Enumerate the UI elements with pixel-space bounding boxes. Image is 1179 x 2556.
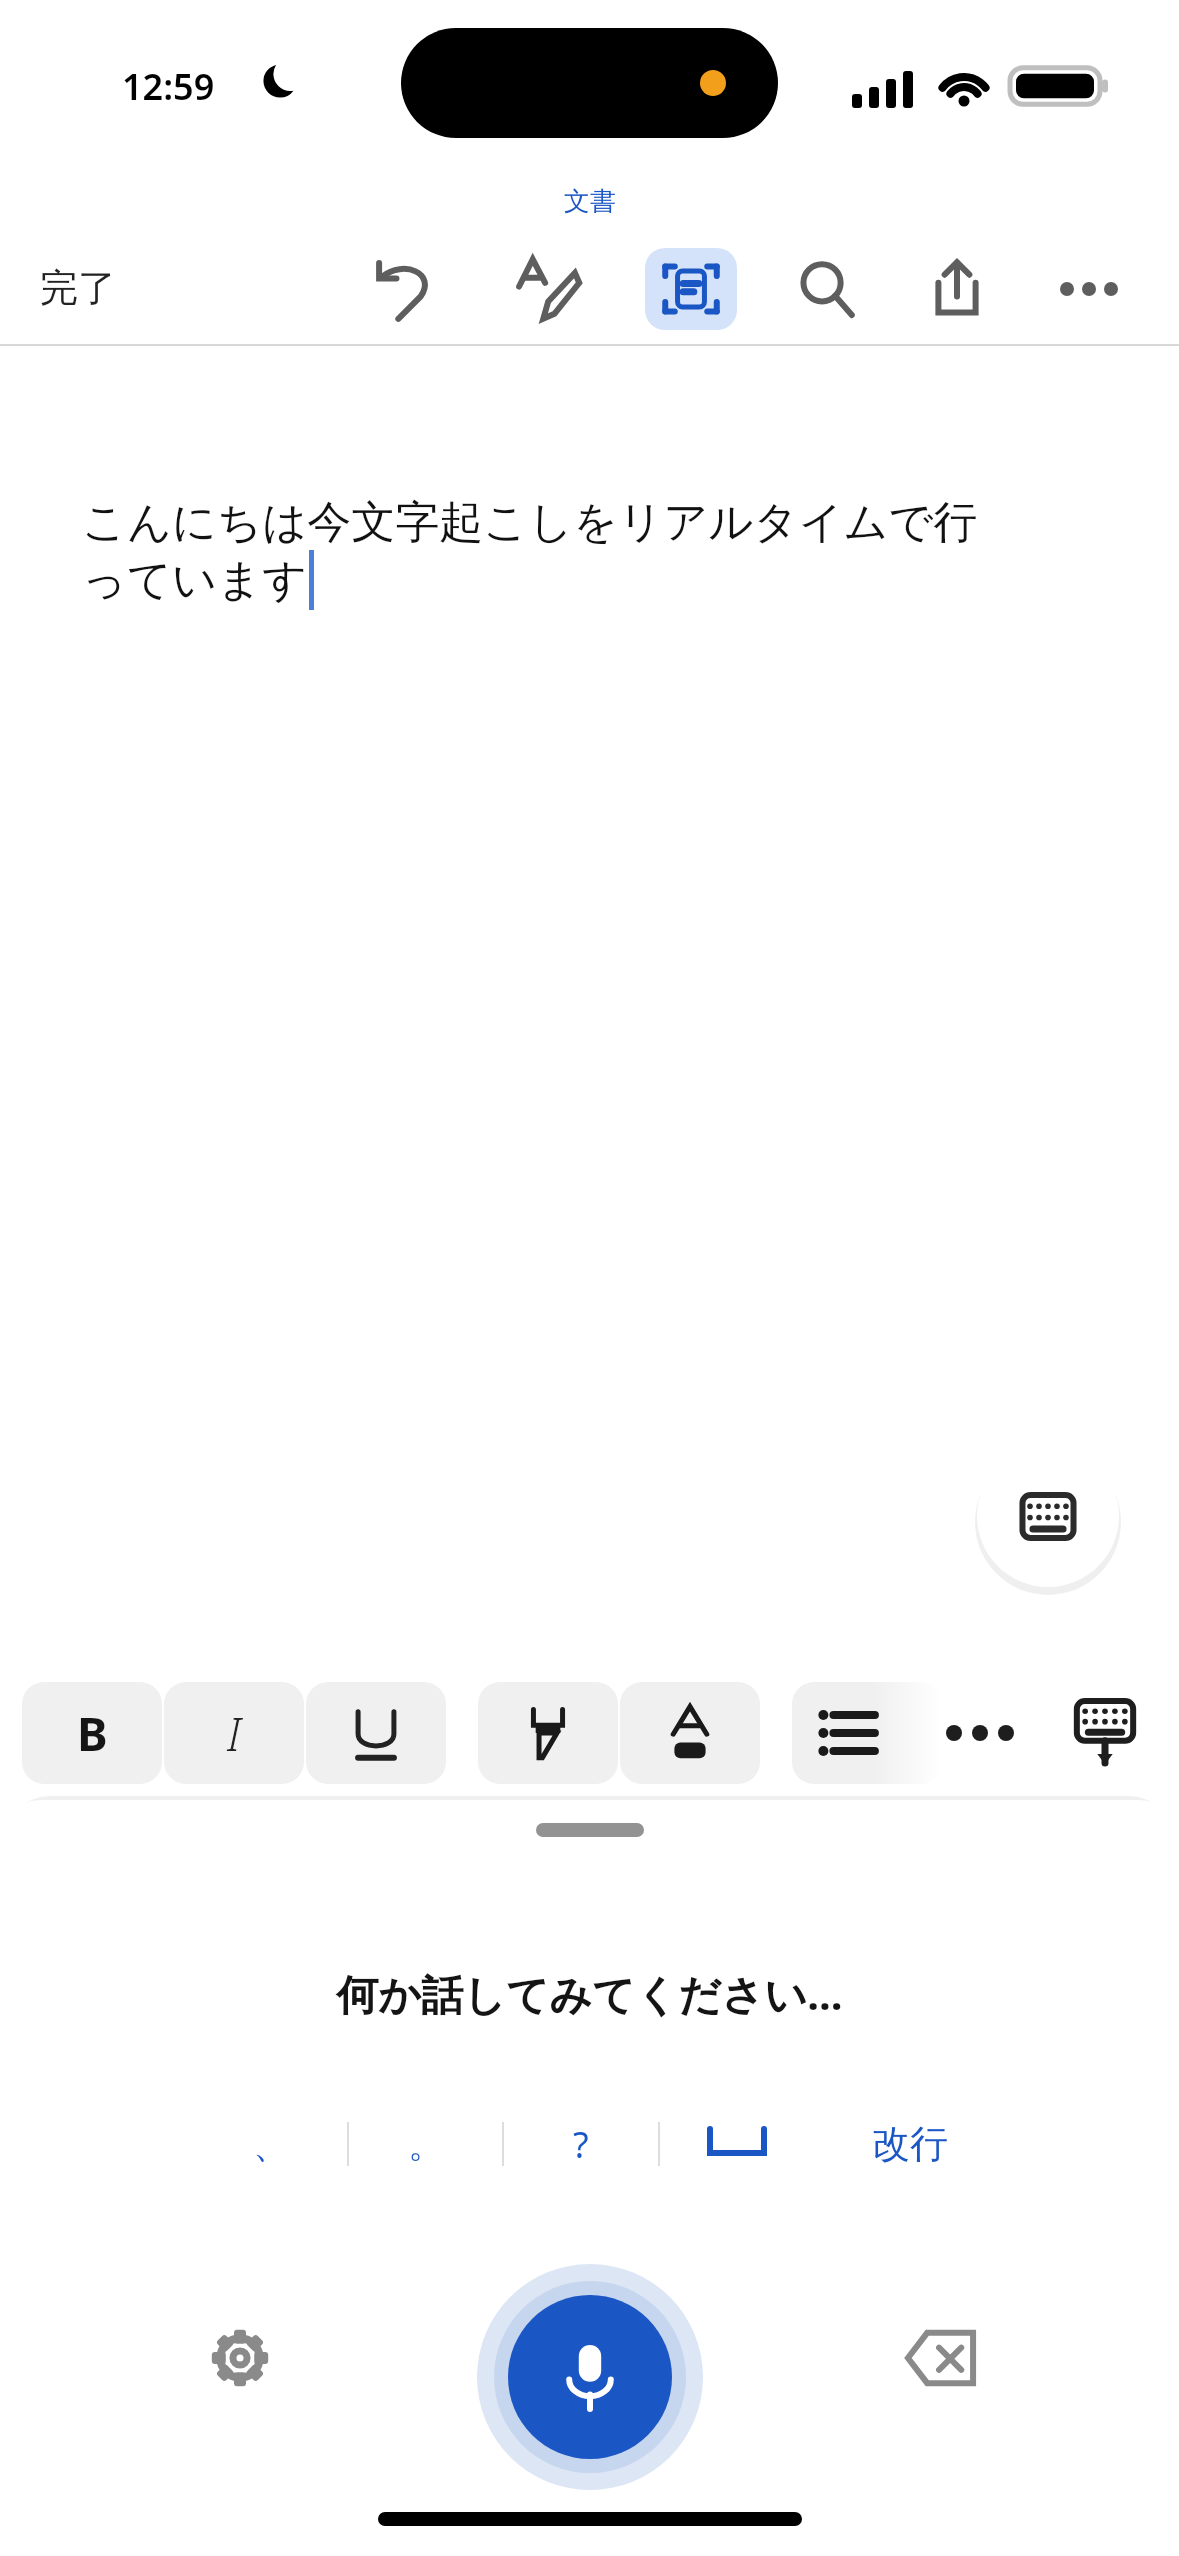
- button[interactable]: Share: [908, 240, 1006, 338]
- staticText: 完了: [40, 264, 116, 312]
- button[interactable]: 、: [194, 2090, 347, 2198]
- button[interactable]: 。: [349, 2090, 502, 2198]
- button[interactable]: More options: [1040, 240, 1138, 338]
- button[interactable]: Settings: [180, 2298, 300, 2418]
- button[interactable]: Backspace: [882, 2298, 1002, 2418]
- button[interactable]: Search: [778, 240, 876, 338]
- button[interactable]: Hide keyboard: [1050, 1678, 1160, 1788]
- button[interactable]: More formatting: [920, 1682, 1040, 1784]
- staticText: 改行: [872, 2120, 948, 2168]
- staticText: 文書: [564, 185, 616, 218]
- button[interactable]: [660, 2090, 814, 2198]
- button[interactable]: Markup: [498, 240, 596, 338]
- button[interactable]: Bulleted list: [792, 1682, 942, 1784]
- staticText: 12:59: [122, 62, 215, 111]
- staticText: 、: [253, 2122, 289, 2167]
- button[interactable]: Document format: [645, 248, 737, 330]
- staticText: 。: [408, 2122, 444, 2167]
- button[interactable]: ?: [504, 2090, 658, 2198]
- button[interactable]: 改行: [834, 2090, 986, 2198]
- button[interactable]: Show keyboard: [975, 1443, 1121, 1589]
- button[interactable]: Microphone: [475, 2262, 705, 2492]
- staticText: B: [77, 1702, 108, 1765]
- button[interactable]: I: [164, 1682, 304, 1784]
- staticText: ?: [573, 2120, 589, 2169]
- staticText: 何か話してみてください...: [336, 1965, 843, 2022]
- button[interactable]: Undo: [358, 240, 456, 338]
- button[interactable]: [306, 1682, 446, 1784]
- button[interactable]: 完了: [40, 232, 116, 344]
- button[interactable]: [620, 1682, 760, 1784]
- staticText: I: [227, 1702, 241, 1765]
- button[interactable]: B: [22, 1682, 162, 1784]
- staticText: こんにちは今文字起こしをリアルタイムで行: [82, 495, 978, 550]
- staticText: っています: [82, 553, 308, 608]
- button[interactable]: [478, 1682, 618, 1784]
